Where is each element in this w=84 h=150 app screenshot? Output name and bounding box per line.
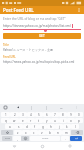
button[interactable]: w (10, 118, 19, 123)
button[interactable]: | (25, 104, 39, 111)
button[interactable]: | (39, 104, 54, 111)
staticText: Enter the URL of blog or rss and tap "GE… (3, 17, 66, 21)
button[interactable]: r (27, 118, 35, 123)
staticText: ?123 (5, 137, 10, 140)
button[interactable]: Enter (70, 136, 82, 141)
button[interactable]: , (13, 136, 21, 141)
button[interactable]: 0 (75, 112, 83, 117)
staticText: 1 (5, 113, 7, 117)
staticText: u (54, 119, 56, 123)
staticText: | (46, 106, 48, 110)
button[interactable]: z (14, 130, 22, 135)
button[interactable]: x (22, 130, 30, 135)
button[interactable]: f (31, 124, 39, 129)
button[interactable]: More options (75, 6, 83, 14)
staticText: g (42, 125, 44, 129)
staticText: . (65, 137, 66, 141)
button[interactable]: Recents (56, 142, 84, 150)
button[interactable]: v (38, 130, 46, 135)
staticText: Space (42, 137, 49, 140)
button[interactable]: Space (30, 136, 60, 141)
button[interactable]: Emoji (21, 136, 29, 141)
button[interactable]: m (62, 130, 70, 135)
button[interactable]: Back (0, 142, 28, 150)
button[interactable]: 2 (10, 112, 19, 117)
button[interactable]: GET (3, 33, 81, 39)
staticText: 4 (30, 113, 32, 117)
staticText: 5 (38, 113, 40, 117)
staticText: k (66, 125, 68, 129)
staticText: o (70, 119, 72, 123)
button[interactable]: u (51, 118, 59, 123)
button[interactable]: 8 (59, 112, 67, 117)
staticText: https://itsnew.yahoo.co.jp/rss/photos/li… (3, 24, 71, 28)
button[interactable]: t (35, 118, 43, 123)
button[interactable]: ◀ (11, 104, 25, 111)
button[interactable]: 1 (1, 112, 10, 117)
staticText: f (34, 125, 36, 129)
button[interactable]: e (19, 118, 27, 123)
staticText: 3 (22, 113, 24, 117)
button[interactable]: s (14, 124, 23, 129)
button[interactable]: q (1, 118, 10, 123)
staticText: v (41, 131, 43, 135)
button[interactable]: 7 (51, 112, 59, 117)
button[interactable]: c (30, 130, 38, 135)
button[interactable]: d (23, 124, 31, 129)
button[interactable]: 4 (27, 112, 35, 117)
button[interactable]: k (63, 124, 71, 129)
button[interactable]: — (54, 104, 69, 111)
staticText: e (22, 119, 24, 123)
staticText: z (17, 131, 19, 135)
staticText: 0 (78, 113, 80, 117)
staticText: ◀ (17, 106, 19, 109)
button[interactable]: b (46, 130, 54, 135)
staticText: c (33, 131, 35, 135)
button[interactable]: 3 (19, 112, 27, 117)
staticText: a (9, 125, 11, 129)
staticText: GET (39, 34, 45, 38)
staticText: m (65, 131, 68, 135)
staticText: l (75, 125, 76, 129)
button[interactable]: Backspace (71, 130, 83, 135)
button[interactable]: o (67, 118, 75, 123)
staticText: https://news.yahoo.co.jp/rss/topics/top-… (3, 60, 75, 64)
staticText: Feed URL (3, 55, 16, 59)
button[interactable]: Toolbar (0, 104, 11, 111)
button[interactable]: 5 (35, 112, 43, 117)
staticText: | (31, 106, 33, 110)
staticText: y (46, 119, 48, 123)
staticText: 9 (70, 113, 72, 117)
staticText: b (49, 131, 51, 135)
staticText: x (25, 131, 27, 135)
button[interactable]: 6 (43, 112, 51, 117)
staticText: — (60, 106, 63, 110)
staticText: Post Feed URL (3, 7, 34, 13)
staticText: j (59, 125, 60, 129)
button[interactable]: n (54, 130, 62, 135)
button[interactable]: 9 (67, 112, 75, 117)
button[interactable]: a (5, 124, 14, 129)
button[interactable]: Home (28, 142, 56, 150)
staticText: Title (3, 43, 9, 47)
button[interactable]: . (61, 136, 69, 141)
staticText: p (78, 119, 80, 123)
staticText: Yahoo!ニュース・トピックス - 主要 (3, 48, 54, 52)
staticText: n (57, 131, 59, 135)
button[interactable]: Shift (1, 130, 13, 135)
staticText: 2 (14, 113, 16, 117)
staticText: i (63, 119, 64, 123)
button[interactable]: p (75, 118, 83, 123)
staticText: r (30, 119, 32, 123)
button[interactable]: j (55, 124, 63, 129)
button[interactable]: i (59, 118, 67, 123)
button[interactable]: ?123 (2, 136, 12, 141)
staticText: 6 (46, 113, 48, 117)
staticText: h (50, 125, 52, 129)
button[interactable]: y (43, 118, 51, 123)
button[interactable]: h (47, 124, 55, 129)
button[interactable]: g (39, 124, 47, 129)
button[interactable]: l (71, 124, 79, 129)
staticText: s (18, 125, 20, 129)
